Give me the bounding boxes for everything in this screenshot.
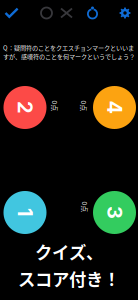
button[interactable]: 1 <box>3 191 46 234</box>
staticText: Q：疑問符のことをクエスチョンマークといいますが、感嘆符のことを何マークというで… <box>3 43 135 61</box>
staticText: スコア付き！ <box>18 266 120 291</box>
button[interactable]: 3 <box>93 191 136 234</box>
button[interactable]: Correct <box>0 3 23 23</box>
button[interactable]: 2 <box>3 86 46 129</box>
staticText: クイズ、 <box>35 239 103 264</box>
button[interactable]: Settings <box>114 2 135 23</box>
staticText: 4 <box>107 95 121 120</box>
button[interactable]: Reset <box>82 2 103 23</box>
staticText: 1 <box>20 200 29 225</box>
staticText: 3 <box>108 200 121 225</box>
button[interactable]: Wrong <box>56 3 77 22</box>
staticText: 0点 <box>79 202 90 212</box>
staticText: 0点 <box>49 101 60 111</box>
staticText: 0点 <box>78 101 89 111</box>
button[interactable]: 4 <box>93 86 136 129</box>
button[interactable]: Skip <box>36 2 57 23</box>
staticText: 2 <box>18 95 31 120</box>
